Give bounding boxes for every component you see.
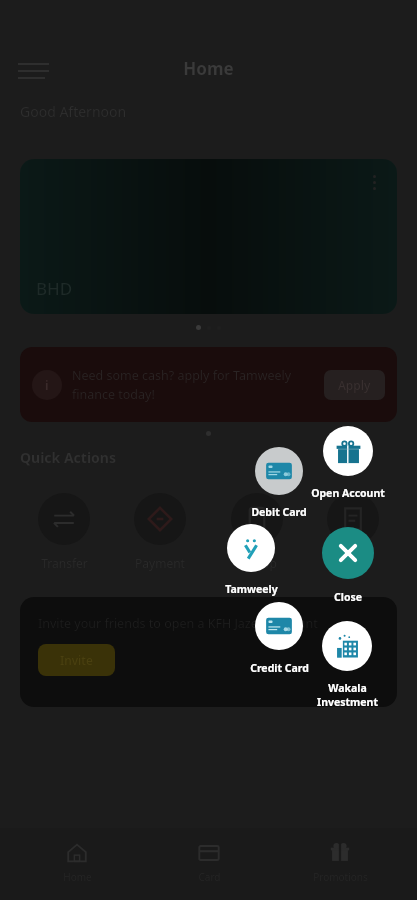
button[interactable]: Menu	[18, 55, 52, 81]
staticText: Close	[334, 590, 362, 604]
button[interactable]: Promotions	[285, 828, 395, 884]
staticText: Apply	[338, 377, 371, 393]
button[interactable]: Apply	[324, 370, 385, 400]
button[interactable]: Card options	[363, 169, 385, 195]
button[interactable]: Payment	[117, 493, 203, 571]
staticText: Tamweely	[225, 582, 278, 596]
button[interactable]: i	[20, 347, 397, 422]
button[interactable]: Close	[322, 527, 374, 579]
staticText: BHD	[36, 277, 73, 300]
staticText: Good Afternoon	[20, 102, 127, 121]
button[interactable]: Tamweely	[227, 524, 275, 572]
staticText: Need some cash? apply for Tamweely	[72, 367, 292, 384]
staticText: Debit Card	[251, 505, 307, 519]
button[interactable]: Apply	[310, 493, 396, 571]
staticText: Home	[183, 57, 234, 80]
button[interactable]: Debit Card	[255, 447, 303, 495]
staticText: Invite	[60, 652, 93, 668]
staticText: Payment	[135, 555, 185, 571]
staticText: Invite your friends to open a KFH Jazeel…	[38, 615, 318, 632]
staticText: finance today!	[72, 386, 155, 403]
staticText: Apply	[337, 555, 369, 571]
staticText: Open Account	[311, 486, 385, 500]
button[interactable]: Invite your friends to open a KFH Jazeel…	[20, 597, 397, 707]
button[interactable]: Transfer	[21, 493, 107, 571]
staticText: Investment	[317, 695, 378, 709]
button[interactable]: Invite	[38, 644, 115, 676]
staticText: Quick Actions	[20, 448, 116, 467]
staticText: Credit Card	[250, 661, 309, 675]
button[interactable]: Card options	[20, 159, 397, 314]
staticText: Wakala	[328, 681, 367, 695]
button[interactable]: Wakala Investment	[322, 621, 372, 671]
staticText: i	[45, 377, 49, 393]
staticText: Top Up	[237, 555, 277, 571]
staticText: Transfer	[41, 555, 88, 571]
button[interactable]: Credit Card	[255, 602, 303, 650]
button[interactable]: Top Up	[214, 493, 300, 571]
button[interactable]: Open Account	[323, 426, 373, 476]
